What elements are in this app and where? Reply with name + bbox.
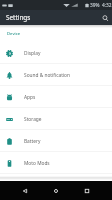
- staticText: Settings: [6, 13, 31, 22]
- staticText: Battery: [24, 138, 41, 145]
- button[interactable]: Battery: [0, 130, 112, 152]
- button[interactable]: Back: [13, 181, 37, 200]
- staticText: 4:32: [102, 2, 112, 9]
- button[interactable]: Display: [0, 42, 112, 64]
- button[interactable]: Sound & notification: [0, 64, 112, 86]
- button[interactable]: Recents: [75, 181, 99, 200]
- staticText: Sound & notification: [24, 72, 70, 79]
- staticText: Display: [24, 50, 41, 57]
- button[interactable]: Home: [44, 181, 68, 200]
- button[interactable]: Search: [99, 12, 111, 24]
- button[interactable]: Apps: [0, 86, 112, 108]
- staticText: Device: [7, 31, 21, 37]
- staticText: Moto Mods: [24, 160, 50, 167]
- staticText: 39%: [90, 2, 100, 9]
- staticText: Apps: [24, 94, 36, 101]
- staticText: Storage: [24, 116, 42, 123]
- button[interactable]: Storage: [0, 108, 112, 130]
- button[interactable]: Moto Mods: [0, 152, 112, 174]
